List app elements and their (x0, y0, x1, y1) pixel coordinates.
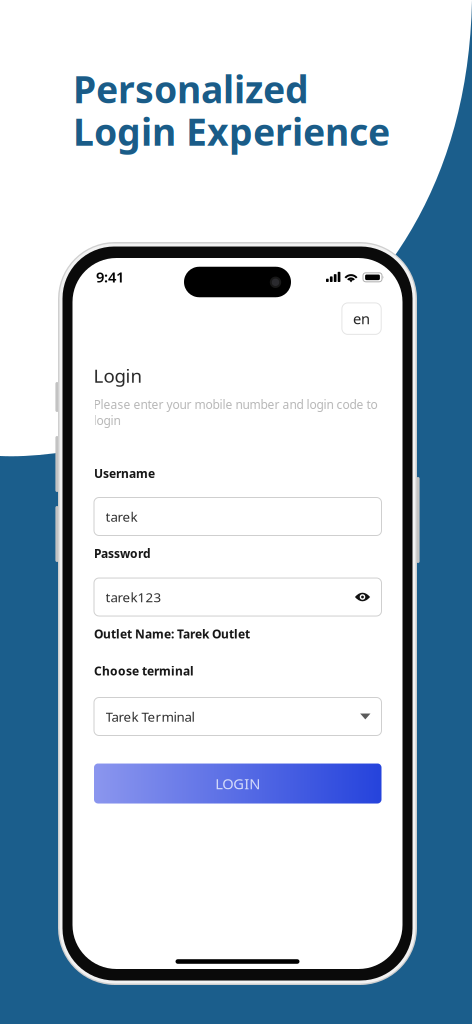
staticText: Login Experience (73, 107, 390, 156)
staticText: Username (94, 465, 155, 481)
staticText: Password (94, 545, 151, 561)
staticText: Login (93, 363, 142, 388)
staticText: Choose terminal (94, 663, 194, 679)
staticText: tarek123 (105, 588, 161, 606)
staticText: 9:41 (96, 267, 124, 286)
button[interactable]: LOGIN (94, 763, 381, 803)
staticText: Outlet Name: Tarek Outlet (94, 626, 250, 642)
staticText: Please enter your mobile number and logi… (93, 396, 377, 428)
staticText: Personalized (73, 64, 309, 114)
staticText: LOGIN (215, 774, 260, 793)
staticText: tarek (105, 508, 137, 525)
staticText: en (353, 309, 370, 328)
button[interactable]: en (342, 303, 381, 334)
staticText: Tarek Terminal (105, 708, 194, 725)
